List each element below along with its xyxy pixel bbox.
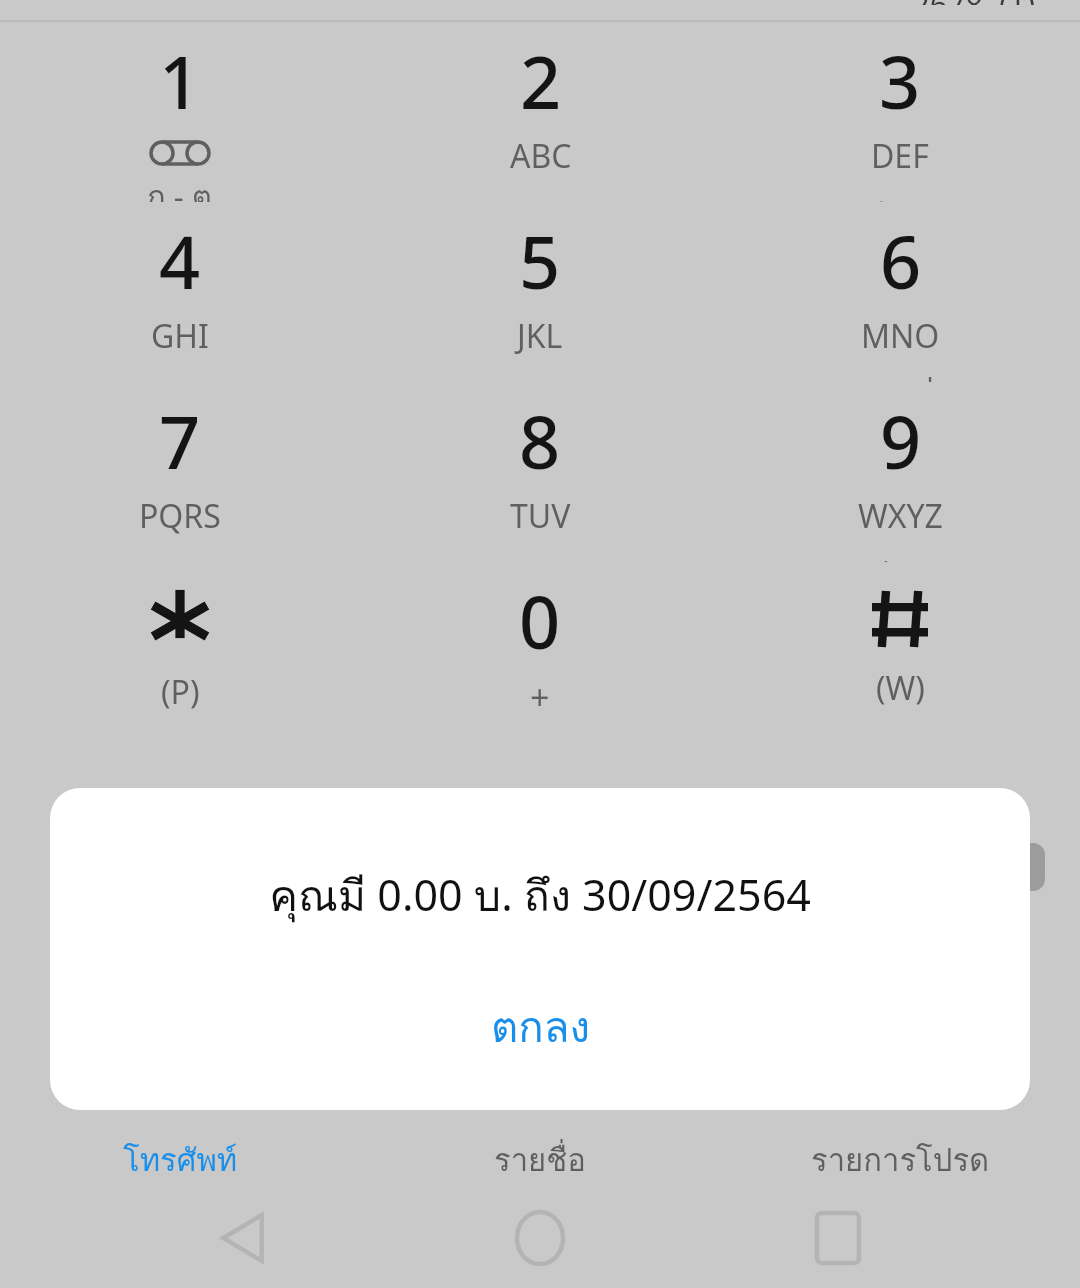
button[interactable]: 4 xyxy=(0,202,360,382)
button[interactable]: โทรศัพท์ xyxy=(0,1130,360,1188)
button[interactable]: 2 xyxy=(360,22,720,202)
button[interactable]: Back xyxy=(188,1188,298,1288)
staticText: + xyxy=(530,674,550,720)
button[interactable]: รายชื่อ xyxy=(360,1130,720,1188)
button[interactable]: (W) xyxy=(720,562,1080,742)
staticText: 9 xyxy=(880,392,922,490)
button[interactable]: Home xyxy=(485,1188,595,1288)
button[interactable]: 7 xyxy=(0,382,360,562)
staticText: PQRS xyxy=(139,494,221,538)
staticText: 4 xyxy=(159,212,201,310)
button[interactable]: 3 xyxy=(720,22,1080,202)
staticText: ก - ต xyxy=(147,172,213,202)
staticText: ตกลง xyxy=(491,994,590,1061)
staticText: 5 xyxy=(519,212,561,310)
staticText: รายชื่อ xyxy=(494,1135,586,1184)
staticText: 1 xyxy=(159,32,201,130)
staticText: DEF xyxy=(871,134,929,178)
staticText: ABC xyxy=(510,134,572,178)
staticText: (W) xyxy=(876,666,925,710)
staticText: (P) xyxy=(161,670,200,714)
staticText: โทรศัพท์ xyxy=(123,1135,238,1184)
button[interactable]: ตกลง xyxy=(401,978,680,1077)
button[interactable]: Recent apps xyxy=(783,1188,893,1288)
button[interactable]: รายการโปรด xyxy=(720,1130,1080,1188)
staticText: TUV xyxy=(510,494,571,538)
button[interactable]: 1 xyxy=(0,22,360,202)
button[interactable]: 0 xyxy=(360,562,720,742)
staticText: 2678 (1) xyxy=(912,0,1036,5)
button[interactable]: (P) xyxy=(0,562,360,742)
staticText: 6 xyxy=(880,212,922,310)
staticText: 8 xyxy=(519,392,561,490)
staticText: น - ฝ xyxy=(868,364,934,382)
button[interactable]: 6 xyxy=(720,202,1080,382)
staticText: 0 xyxy=(519,572,561,670)
staticText: MNO xyxy=(861,314,940,358)
staticText: ส - ฮ xyxy=(869,544,933,562)
staticText: รายการโปรด xyxy=(811,1135,990,1184)
staticText: 2 xyxy=(520,32,562,130)
button[interactable]: 8 xyxy=(360,382,720,562)
button[interactable]: 9 xyxy=(720,382,1080,562)
staticText: 3 xyxy=(879,32,921,130)
staticText: JKL xyxy=(517,314,563,358)
staticText: GHI xyxy=(151,314,209,358)
staticText: คุณมี 0.00 บ. ถึง 30/09/2564 xyxy=(50,862,1030,930)
staticText: WXYZ xyxy=(858,494,943,538)
staticText: 7 xyxy=(159,392,201,490)
button[interactable]: 5 xyxy=(360,202,720,382)
